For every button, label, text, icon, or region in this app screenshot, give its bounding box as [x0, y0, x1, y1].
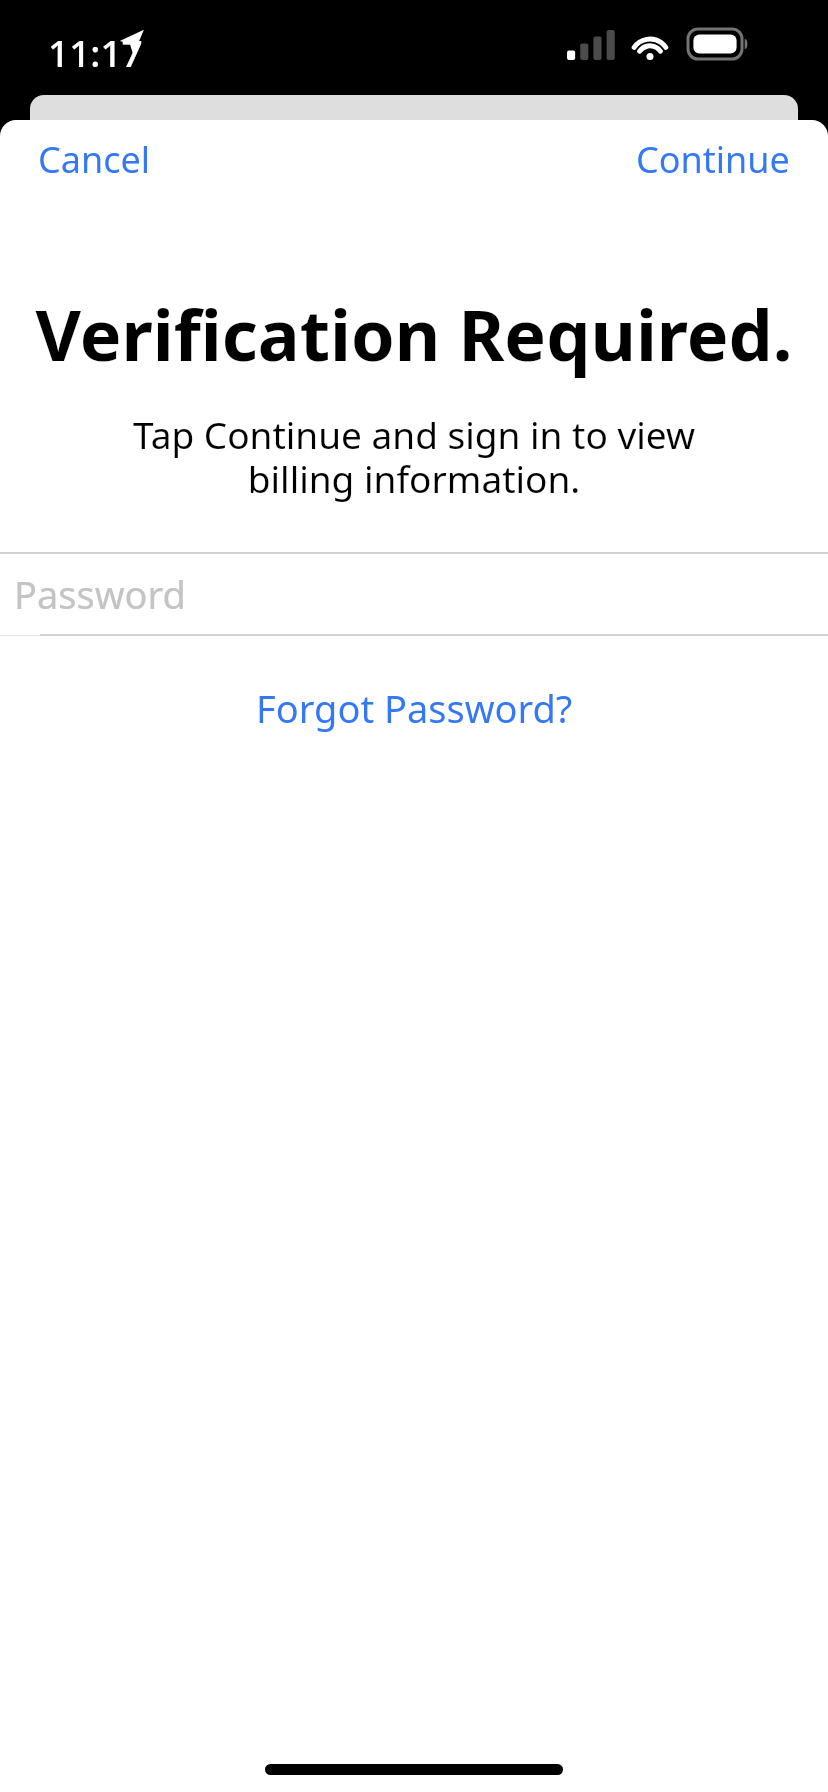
button[interactable]: Cancel — [16, 127, 173, 192]
staticText: Tap Continue and sign in to view billing… — [92, 409, 736, 504]
staticText: Forgot Password? — [256, 682, 573, 734]
other: Cellular signal — [567, 30, 615, 60]
other: Wi-Fi — [629, 28, 671, 60]
button[interactable]: Forgot Password? — [232, 672, 597, 744]
button[interactable]: Password — [0, 552, 828, 636]
staticText: Password — [14, 568, 186, 620]
staticText: Verification Required. — [0, 286, 828, 381]
other: Battery — [688, 29, 748, 59]
staticText: 11:17 — [48, 27, 143, 77]
button[interactable]: Continue — [614, 127, 812, 192]
staticText: Continue — [636, 135, 790, 184]
other: Location in use — [117, 28, 145, 56]
staticText: Cancel — [38, 135, 151, 184]
